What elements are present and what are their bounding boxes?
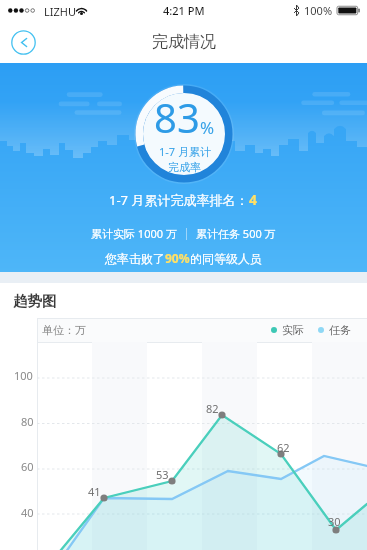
staticText: 完成率: [168, 160, 201, 174]
staticText: 1-7 月累计完成率排名：: [109, 191, 249, 209]
staticText: 4:21 PM: [163, 3, 205, 18]
staticText: 100: [14, 368, 33, 383]
staticText: 单位：万: [42, 323, 86, 337]
staticText: 趋势图: [13, 292, 57, 310]
staticText: 4: [249, 190, 258, 209]
staticText: 100%: [304, 3, 333, 18]
staticText: LIZHU: [44, 4, 76, 19]
button[interactable]: Back: [11, 30, 36, 55]
staticText: 任务: [329, 323, 351, 337]
staticText: 您率击败了: [105, 251, 165, 266]
staticText: 1-7 月累计: [159, 144, 211, 159]
staticText: 累计任务 500 万: [196, 226, 276, 241]
staticText: %: [200, 116, 215, 139]
staticText: 80: [21, 414, 34, 429]
staticText: 60: [21, 459, 34, 474]
staticText: 40: [21, 505, 34, 520]
staticText: 30: [328, 514, 341, 529]
staticText: 41: [88, 484, 101, 499]
staticText: 90%: [165, 250, 190, 266]
staticText: 82: [206, 401, 219, 416]
staticText: 53: [156, 467, 169, 482]
staticText: 62: [277, 440, 290, 455]
staticText: 83: [154, 90, 200, 144]
staticText: 的同等级人员: [190, 251, 262, 266]
staticText: 实际: [282, 323, 304, 337]
staticText: 完成情况: [152, 32, 216, 52]
staticText: 累计实际 1000 万: [91, 226, 177, 241]
